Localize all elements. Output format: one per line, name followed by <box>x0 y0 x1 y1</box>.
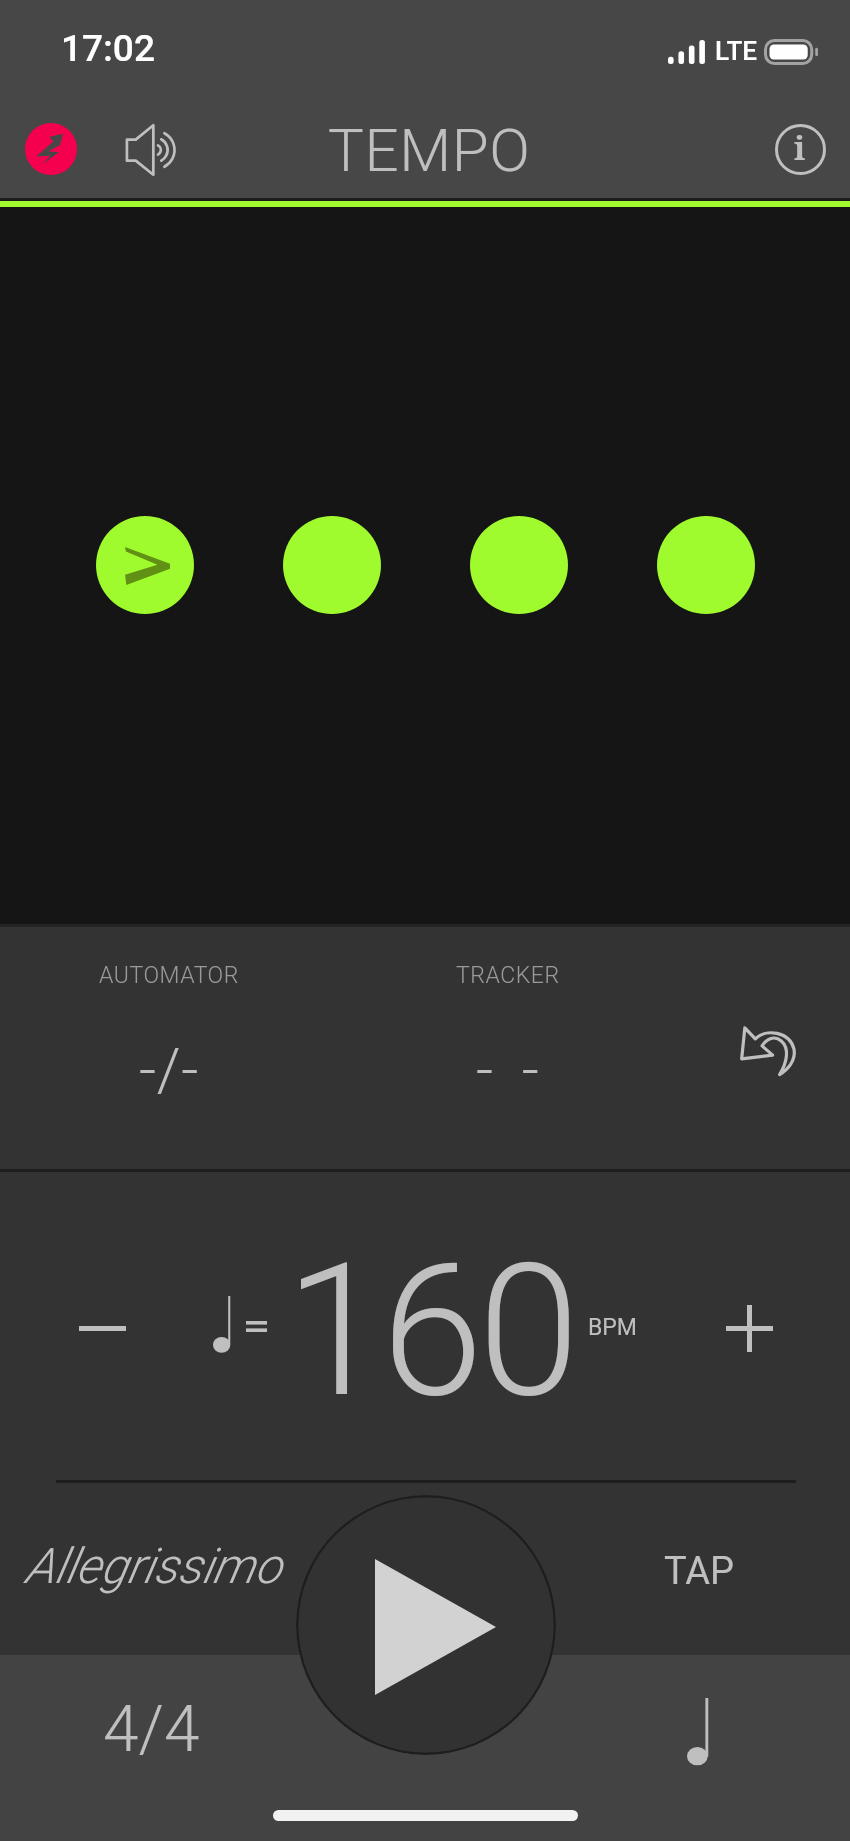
staticText: Allegrissimo <box>25 1538 282 1595</box>
button[interactable]: TAP <box>664 1549 734 1594</box>
button[interactable]: Allegrissimo <box>25 1538 282 1595</box>
staticText: 4/4 <box>103 1692 200 1767</box>
staticText: LTE <box>715 36 757 66</box>
staticText: AUTOMATOR <box>99 962 239 989</box>
staticText: TRACKER <box>456 962 560 989</box>
button[interactable]: Info <box>760 109 840 189</box>
button[interactable]: Increase tempo <box>669 1268 829 1388</box>
staticText: i <box>794 126 806 170</box>
staticText: TEMPO <box>328 115 531 185</box>
button[interactable]: Decrease tempo <box>22 1268 182 1388</box>
staticText: BPM <box>588 1314 637 1341</box>
button[interactable]: Beat 1 <box>96 516 194 614</box>
staticText: TAP <box>664 1549 734 1594</box>
button[interactable]: Play <box>296 1495 556 1755</box>
staticText: - - <box>476 1034 540 1104</box>
button[interactable]: Beat 4 <box>657 516 755 614</box>
button[interactable]: Beat 2 <box>283 516 381 614</box>
button[interactable]: Speed trainer <box>12 110 90 188</box>
button[interactable]: Reset tracker <box>722 1006 812 1096</box>
button[interactable]: Note value <box>653 1687 743 1777</box>
button[interactable]: Sound <box>108 106 196 194</box>
staticText: 17:02 <box>61 27 155 70</box>
staticText: -/- <box>139 1034 199 1104</box>
button[interactable]: 4/4 <box>103 1692 200 1767</box>
staticText: 160 <box>285 1224 575 1438</box>
button[interactable]: Beat 3 <box>470 516 568 614</box>
